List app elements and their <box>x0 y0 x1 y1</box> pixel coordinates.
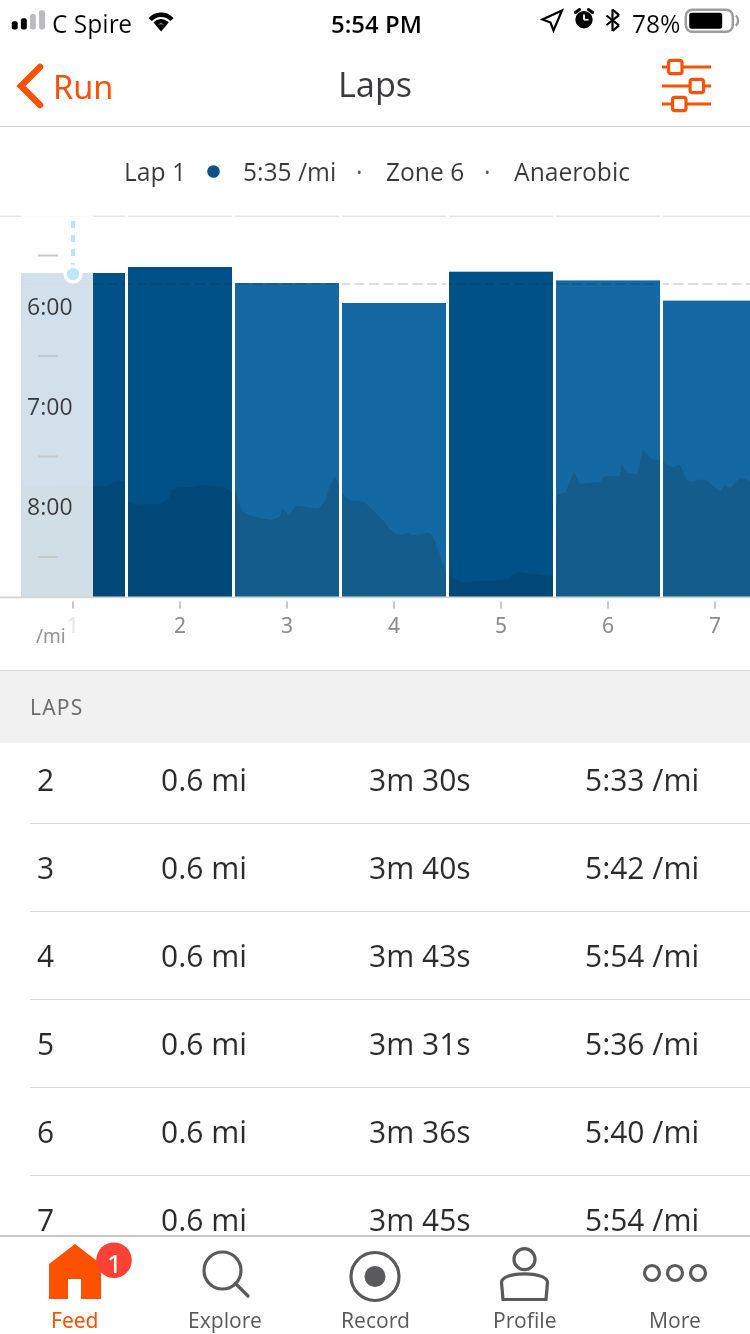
button[interactable]: 2 <box>0 743 750 823</box>
staticText: Laps <box>338 61 413 107</box>
button[interactable]: Run <box>0 56 126 116</box>
staticText: 2 <box>37 759 55 800</box>
staticText: 5:54 /mi <box>585 935 700 976</box>
staticText: LAPS <box>30 693 84 722</box>
staticText: 7 <box>690 611 740 640</box>
staticText: 4 <box>369 611 419 640</box>
staticText: 0.6 mi <box>161 1199 247 1240</box>
staticText: Anaerobic <box>514 155 630 188</box>
staticText: C Spire <box>52 7 133 40</box>
staticText: 5:35 /mi <box>243 155 337 188</box>
staticText: 3m 36s <box>369 1111 471 1152</box>
staticText: 4 <box>37 935 55 976</box>
staticText: 1 <box>48 611 98 640</box>
staticText: 5 <box>476 611 526 640</box>
staticText: Zone 6 <box>386 155 465 188</box>
staticText: Lap 1 <box>124 155 187 188</box>
staticText: 5 <box>37 1023 55 1064</box>
button[interactable]: Explore <box>150 1235 300 1334</box>
staticText: 2 <box>155 611 205 640</box>
staticText: 3 <box>37 847 55 888</box>
staticText: 6 <box>37 1111 55 1152</box>
staticText: Run <box>53 64 114 108</box>
staticText: 6:00 <box>27 290 73 321</box>
staticText: Feed <box>51 1306 99 1334</box>
staticText: Record <box>341 1306 410 1334</box>
staticText: Explore <box>188 1306 262 1334</box>
button[interactable]: 5 <box>0 999 750 1087</box>
staticText: 5:54 PM <box>331 7 423 40</box>
staticText: 0.6 mi <box>161 847 247 888</box>
staticText: · <box>356 155 363 188</box>
staticText: 3m 43s <box>369 935 471 976</box>
button[interactable]: 6 <box>0 1087 750 1175</box>
staticText: Profile <box>493 1306 557 1334</box>
staticText: 3m 30s <box>369 759 471 800</box>
staticText: 0.6 mi <box>161 759 247 800</box>
staticText: · <box>484 155 491 188</box>
button[interactable]: 4 <box>0 911 750 999</box>
staticText: 0.6 mi <box>161 1111 247 1152</box>
staticText: 6 <box>583 611 633 640</box>
staticText: More <box>649 1306 701 1334</box>
staticText: 5:33 /mi <box>585 759 700 800</box>
staticText: 7 <box>37 1199 55 1240</box>
staticText: 78% <box>632 7 681 40</box>
button[interactable]: Chart settings <box>640 47 750 125</box>
staticText: 3m 40s <box>369 847 471 888</box>
button[interactable]: 1 <box>0 1235 150 1334</box>
staticText: /mi <box>36 623 66 649</box>
staticText: 3 <box>262 611 312 640</box>
staticText: 3m 31s <box>369 1023 471 1064</box>
button[interactable]: 7 <box>0 1175 750 1263</box>
staticText: 8:00 <box>27 490 73 521</box>
button[interactable]: More <box>600 1235 750 1334</box>
staticText: 0.6 mi <box>161 935 247 976</box>
staticText: 5:42 /mi <box>585 847 700 888</box>
staticText: 1 <box>107 1245 122 1280</box>
button[interactable]: Record <box>300 1235 450 1334</box>
staticText: 3m 45s <box>369 1199 471 1240</box>
staticText: 0.6 mi <box>161 1023 247 1064</box>
button[interactable]: Profile <box>450 1235 600 1334</box>
staticText: 7:00 <box>27 390 73 421</box>
button[interactable]: 3 <box>0 823 750 911</box>
staticText: 5:40 /mi <box>585 1111 700 1152</box>
staticText: 5:54 /mi <box>585 1199 700 1240</box>
staticText: 5:36 /mi <box>585 1023 700 1064</box>
